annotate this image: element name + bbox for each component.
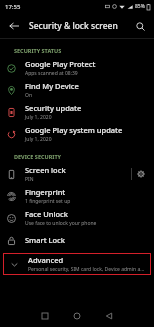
staticText: Fingerprint — [25, 187, 66, 197]
button[interactable]: Face Unlock — [0, 207, 154, 229]
button[interactable]: Search — [132, 18, 148, 34]
staticText: Google Play system update — [25, 125, 123, 135]
button[interactable]: Recent apps — [33, 304, 57, 327]
staticText: PIN — [25, 176, 34, 183]
staticText: 17:55 — [5, 3, 21, 11]
staticText: Google Play Protect — [25, 59, 96, 69]
staticText: Find My Device — [25, 81, 79, 91]
staticText: Smart Lock — [25, 235, 65, 245]
staticText: Apps scanned at 08:39 — [25, 70, 78, 77]
staticText: 85% — [135, 3, 145, 10]
staticText: DEVICE SECURITY — [14, 153, 62, 160]
button[interactable]: Back — [97, 304, 121, 327]
button[interactable]: Find My Device — [0, 79, 154, 101]
button[interactable]: Smart Lock — [0, 229, 154, 251]
button[interactable]: Home — [65, 304, 89, 327]
button[interactable]: Back — [6, 18, 22, 34]
staticText: Advanced — [28, 255, 64, 265]
button[interactable]: Google Play Protect — [0, 57, 154, 79]
staticText: July 1, 2020 — [25, 136, 52, 143]
button[interactable]: Screen lock — [0, 163, 154, 185]
button[interactable]: Fingerprint — [0, 185, 154, 207]
staticText: July 1, 2020 — [25, 114, 52, 121]
staticText: On — [25, 92, 32, 99]
staticText: Screen lock — [25, 165, 66, 175]
staticText: Personal security, SIM card lock, Device… — [28, 266, 147, 273]
button[interactable]: Security update — [0, 101, 154, 123]
staticText: Face Unlock — [25, 209, 68, 219]
button[interactable]: Screen lock settings — [132, 165, 150, 183]
staticText: SECURITY STATUS — [14, 47, 62, 54]
staticText: 1 fingerprint set up — [25, 198, 71, 205]
button[interactable]: Google Play system update — [0, 123, 154, 145]
staticText: Security & lock screen — [29, 20, 118, 32]
staticText: Use face to unlock your phone — [25, 220, 97, 227]
button[interactable]: Advanced — [3, 253, 151, 275]
staticText: Security update — [25, 103, 82, 113]
